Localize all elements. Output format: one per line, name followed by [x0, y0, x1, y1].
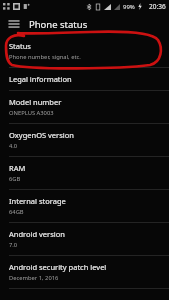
- button[interactable]: Legal information: [0, 68, 169, 90]
- staticText: 6GB: [9, 175, 21, 183]
- staticText: 64GB: [9, 208, 24, 216]
- button[interactable]: Android version: [0, 223, 169, 255]
- staticText: Status: [9, 41, 31, 51]
- staticText: December 1, 2016: [9, 274, 59, 282]
- staticText: Model number: [9, 97, 62, 107]
- staticText: Android version: [9, 229, 65, 239]
- staticText: 20:36: [149, 2, 166, 11]
- button[interactable]: Android security patch level: [0, 256, 169, 288]
- staticText: Internal storage: [9, 196, 66, 206]
- staticText: Phone status: [29, 18, 88, 31]
- button[interactable]: RAM: [0, 157, 169, 189]
- button[interactable]: Internal storage: [0, 190, 169, 222]
- button[interactable]: OxygenOS version: [0, 124, 169, 156]
- staticText: 4.0: [9, 142, 18, 150]
- staticText: Android security patch level: [9, 262, 107, 272]
- staticText: Legal information: [9, 74, 72, 84]
- staticText: ONEPLUS A3003: [9, 109, 54, 117]
- staticText: 99%: [123, 3, 135, 11]
- staticText: RAM: [9, 163, 26, 173]
- button[interactable]: Model number: [0, 91, 169, 123]
- staticText: 7.0: [9, 241, 18, 249]
- staticText: OxygenOS version: [9, 130, 74, 140]
- button[interactable]: Open navigation menu: [6, 16, 22, 32]
- staticText: Phone number, signal, etc.: [9, 53, 81, 61]
- button[interactable]: Status: [0, 35, 169, 67]
